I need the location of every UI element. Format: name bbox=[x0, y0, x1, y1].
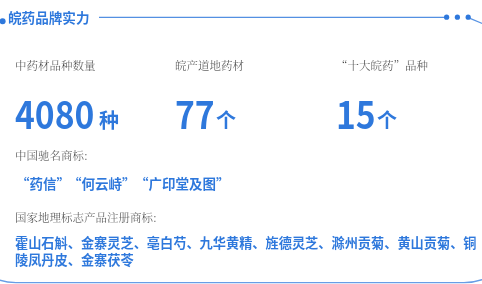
button[interactable]: 皖药品牌实力 bbox=[0, 6, 96, 34]
staticText: 4080 bbox=[15, 85, 95, 140]
staticText: 皖药品牌实力 bbox=[8, 7, 90, 27]
button[interactable] bbox=[160, 50, 320, 136]
staticText: “十大皖药”品种 bbox=[336, 57, 428, 74]
staticText: 77 bbox=[175, 85, 215, 140]
staticText: “何云峙” bbox=[68, 173, 136, 193]
staticText: 皖产道地药材 bbox=[175, 57, 244, 74]
staticText: 个 bbox=[216, 105, 236, 134]
staticText: 霍山石斛、金寨灵芝、亳白芍、九华黄精、旌德灵芝、滁州贡菊、黄山贡菊、铜陵凤丹皮、… bbox=[15, 233, 479, 269]
staticText: “广印堂及图” bbox=[135, 173, 230, 193]
button[interactable] bbox=[0, 50, 160, 136]
staticText: 15 bbox=[336, 85, 376, 140]
staticText: 种 bbox=[99, 105, 119, 134]
staticText: 中国驰名商标: bbox=[15, 147, 88, 164]
staticText: 中药材品种数量 bbox=[15, 57, 96, 74]
staticText: “药信” bbox=[16, 173, 70, 193]
button[interactable] bbox=[322, 50, 482, 136]
staticText: 个 bbox=[377, 105, 397, 134]
staticText: 国家地理标志产品注册商标: bbox=[15, 209, 157, 226]
